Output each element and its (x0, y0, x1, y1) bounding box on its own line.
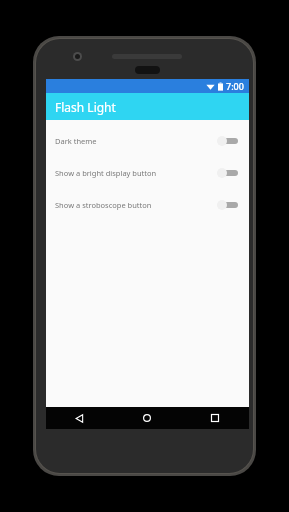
button[interactable]: Toggle (217, 199, 239, 211)
button[interactable]: Show a bright display button (46, 157, 249, 189)
button[interactable]: Toggle (217, 167, 239, 179)
button[interactable]: Dark theme (46, 125, 249, 157)
staticText: Show a bright display button (55, 168, 217, 178)
button[interactable]: Show a stroboscope button (46, 189, 249, 221)
button[interactable]: Toggle (217, 135, 239, 147)
staticText: Flash Light (55, 99, 116, 115)
button[interactable]: Recent apps (181, 407, 249, 429)
staticText: Show a stroboscope button (55, 200, 217, 210)
button[interactable]: Home (113, 407, 181, 429)
staticText: 7:00 (226, 80, 244, 92)
staticText: Dark theme (55, 136, 217, 146)
button[interactable]: Back (46, 407, 113, 429)
